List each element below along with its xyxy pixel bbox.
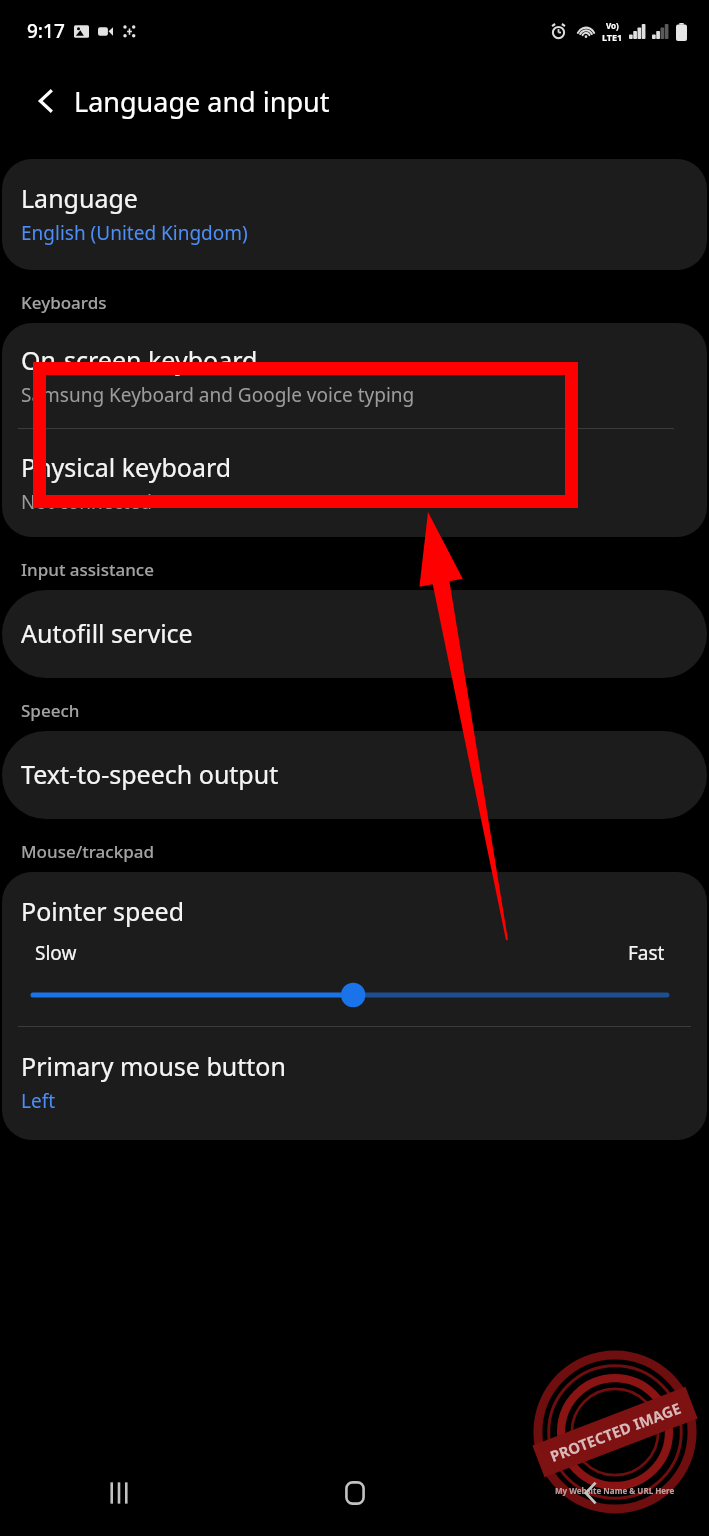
button[interactable]: Back <box>22 77 70 125</box>
button[interactable]: On-screen keyboard <box>2 323 707 428</box>
button[interactable]: Autofill service <box>2 590 707 678</box>
staticText: Primary mouse button <box>21 1049 286 1083</box>
staticText: Speech <box>21 699 80 722</box>
staticText: Text-to-speech output <box>21 757 279 791</box>
staticText: Slow <box>35 940 77 966</box>
staticText: Left <box>21 1088 56 1114</box>
button[interactable]: Language <box>2 159 707 270</box>
staticText: Keyboards <box>21 291 107 314</box>
button[interactable]: Recent apps <box>0 1450 237 1536</box>
staticText: LTE1 <box>602 31 623 43</box>
staticText: Language <box>21 181 138 215</box>
staticText: Input assistance <box>21 558 154 581</box>
staticText: Not connected <box>21 489 152 515</box>
staticText: Physical keyboard <box>21 450 232 484</box>
staticText: Language and input <box>74 83 330 120</box>
button[interactable]: Physical keyboard <box>2 429 707 537</box>
button[interactable]: Pointer speed <box>2 872 707 1026</box>
staticText: My Website Name & URL Here <box>555 1485 675 1496</box>
staticText: Fast <box>628 940 665 966</box>
button[interactable]: Text-to-speech output <box>2 731 707 819</box>
staticText: Pointer speed <box>21 894 185 928</box>
button[interactable]: Back <box>473 1450 709 1536</box>
staticText: Mouse/trackpad <box>21 840 154 863</box>
staticText: PROTECTED IMAGE <box>547 1398 684 1466</box>
staticText: Vo) <box>606 20 619 31</box>
staticText: Samsung Keyboard and Google voice typing <box>21 382 415 408</box>
button[interactable]: Primary mouse button <box>2 1027 707 1140</box>
staticText: English (United Kingdom) <box>21 220 248 246</box>
button[interactable]: Home <box>237 1450 473 1536</box>
staticText: 9:17 <box>27 18 65 44</box>
staticText: Autofill service <box>21 616 193 650</box>
staticText: On-screen keyboard <box>21 343 258 377</box>
